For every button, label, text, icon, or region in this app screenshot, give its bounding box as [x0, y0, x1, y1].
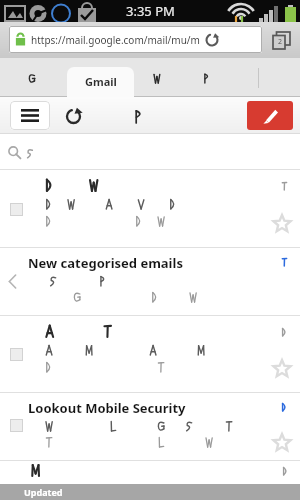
button[interactable]: Select conversation [0, 393, 300, 461]
button[interactable]: Select conversation [10, 348, 23, 361]
staticText: https://mail.google.com/mail/mu/m [31, 33, 200, 47]
button[interactable]: New categorised emails [0, 248, 300, 316]
button[interactable]: Gmail [67, 67, 134, 97]
button[interactable]: Star conversation [270, 212, 294, 236]
button[interactable] [0, 461, 300, 500]
button[interactable]: Tab 1 [0, 58, 67, 97]
button[interactable]: Star conversation [270, 431, 294, 455]
button[interactable]: Tab 4 [184, 58, 234, 97]
button[interactable]: Select conversation [10, 419, 23, 432]
button[interactable]: Star conversation [270, 357, 294, 381]
button[interactable]: Tabs, 2 open [269, 28, 293, 52]
staticText: 2 [278, 37, 283, 47]
staticText: 3:35 PM [126, 2, 175, 20]
button[interactable]: Menu option [126, 102, 154, 130]
staticText: Gmail [85, 74, 117, 89]
button[interactable] [0, 134, 300, 170]
button[interactable]: Tab 3 [134, 58, 184, 97]
button[interactable]: Compose [247, 101, 293, 130]
button[interactable]: Select conversation [0, 170, 300, 248]
button[interactable]: Refresh [58, 101, 88, 131]
button[interactable]: Open navigation menu [10, 101, 50, 130]
staticText: Lookout Mobile Security [28, 399, 186, 417]
staticText: New categorised emails [28, 254, 183, 272]
button[interactable]: Select conversation [10, 203, 23, 216]
button[interactable]: Reload page [203, 31, 221, 49]
button[interactable]: Select conversation [0, 316, 300, 393]
button[interactable]: https://mail.google.com/mail/mu/m [9, 26, 262, 53]
staticText: Updated [24, 486, 63, 498]
